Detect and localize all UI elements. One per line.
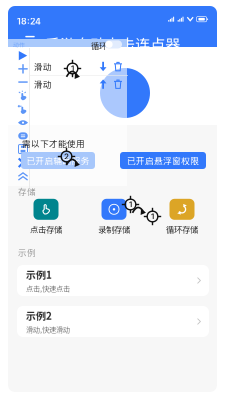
- staticText: 录制存储: [98, 223, 130, 235]
- staticText: 1: [71, 64, 74, 73]
- staticText: 示例1: [26, 267, 52, 282]
- staticText: 1: [129, 200, 132, 209]
- button[interactable]: 已开启悬浮窗权限: [120, 152, 206, 169]
- button[interactable]: 删除一步: [17, 77, 29, 87]
- button[interactable]: 播放: [17, 51, 29, 60]
- staticText: 已开启悬浮窗权限: [127, 154, 199, 167]
- button[interactable]: 收起: [17, 172, 29, 181]
- staticText: 示例2: [26, 308, 52, 323]
- staticText: 动作: [13, 40, 25, 49]
- staticText: 滑动,快速滑动: [26, 324, 70, 335]
- button[interactable]: 保存: [17, 144, 29, 154]
- staticText: 存储: [18, 185, 36, 197]
- staticText: 循环: [91, 39, 107, 51]
- staticText: 点击存储: [30, 223, 62, 235]
- button[interactable]: 已开启辅助服务: [21, 152, 95, 169]
- button[interactable]: 循环: [105, 40, 122, 48]
- staticText: 示例: [18, 246, 36, 258]
- button[interactable]: 点击: [17, 91, 29, 100]
- button[interactable]: 菜单: [24, 35, 36, 44]
- staticText: 点击,快速点击: [26, 283, 70, 294]
- button[interactable]: 添加: [17, 64, 29, 73]
- staticText: 循环存储: [166, 223, 198, 235]
- button[interactable]: 点击存储: [12, 201, 80, 233]
- button[interactable]: 录制存储: [80, 201, 148, 233]
- staticText: 滑动: [34, 60, 52, 73]
- button[interactable]: 示例2: [17, 306, 209, 337]
- staticText: 滑动: [34, 78, 52, 90]
- button[interactable]: 预览: [17, 118, 29, 127]
- staticText: 手游自动点击连点器: [45, 33, 180, 55]
- button[interactable]: 关闭: [17, 158, 29, 168]
- staticText: 2: [64, 152, 69, 161]
- button[interactable]: 循环存储: [148, 201, 216, 233]
- staticText: 需以下才能使用: [22, 137, 85, 149]
- staticText: 已开启辅助服务: [26, 154, 89, 167]
- staticText: 1: [151, 212, 154, 221]
- button[interactable]: 参数: [17, 131, 29, 140]
- button[interactable]: 滑动: [17, 104, 29, 114]
- staticText: 18:24: [17, 16, 41, 27]
- button[interactable]: 示例1: [17, 265, 209, 296]
